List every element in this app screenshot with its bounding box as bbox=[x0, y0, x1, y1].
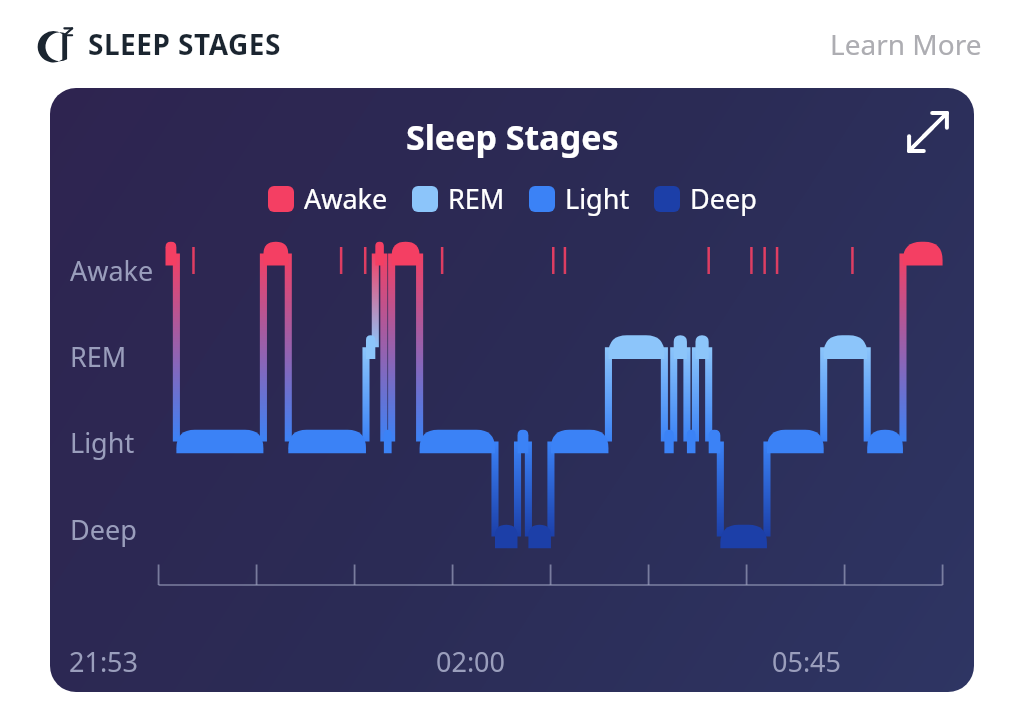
staticText: Sleep Stages bbox=[406, 114, 619, 160]
button[interactable]: REM bbox=[410, 176, 507, 221]
button[interactable]: Sleep Stages bbox=[50, 88, 974, 692]
button[interactable]: SLEEP STAGES bbox=[30, 17, 285, 71]
staticText: Deep bbox=[70, 511, 137, 548]
staticText: 05:45 bbox=[772, 643, 842, 680]
staticText: Awake bbox=[304, 180, 388, 217]
staticText: Learn More bbox=[830, 25, 982, 63]
button[interactable]: Expand chart bbox=[900, 104, 956, 160]
staticText: REM bbox=[70, 338, 127, 375]
staticText: 02:00 bbox=[436, 643, 506, 680]
staticText: Awake bbox=[70, 252, 154, 289]
staticText: Light bbox=[70, 424, 135, 461]
staticText: 21:53 bbox=[69, 643, 139, 680]
staticText: Light bbox=[565, 180, 630, 217]
button[interactable]: Light bbox=[527, 176, 632, 221]
staticText: Deep bbox=[690, 180, 757, 217]
staticText: REM bbox=[448, 180, 505, 217]
button[interactable]: Awake bbox=[266, 176, 390, 221]
staticText: SLEEP STAGES bbox=[88, 25, 281, 63]
button[interactable]: Deep bbox=[652, 176, 759, 221]
button[interactable]: Learn More bbox=[822, 17, 990, 71]
